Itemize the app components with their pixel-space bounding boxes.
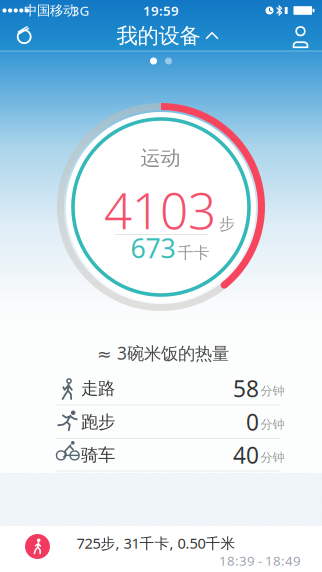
staticText: 0 bbox=[246, 407, 259, 437]
staticText: 步 bbox=[219, 214, 235, 234]
staticText: 千卡 bbox=[177, 243, 209, 263]
staticText: 3G bbox=[71, 2, 89, 19]
button[interactable]: 我的设备 bbox=[116, 14, 217, 58]
staticText: 走路 bbox=[81, 378, 115, 399]
button[interactable]: 725步, 31千卡, 0.50千米 bbox=[0, 526, 322, 572]
staticText: 18:39 - 18:49 bbox=[219, 552, 301, 569]
staticText: 40 bbox=[233, 440, 259, 470]
staticText: 725步, 31千卡, 0.50千米 bbox=[76, 533, 235, 553]
staticText: 4103 bbox=[104, 177, 216, 243]
staticText: 分钟 bbox=[260, 383, 284, 398]
staticText: 673 bbox=[130, 230, 175, 266]
staticText: 骑车 bbox=[81, 444, 115, 466]
button[interactable]: 个人信息 bbox=[285, 23, 315, 53]
staticText: 运动 bbox=[140, 146, 180, 170]
staticText: 58 bbox=[233, 373, 259, 403]
staticText: ≈ 3碗米饭的热量 bbox=[97, 341, 229, 364]
staticText: 跑步 bbox=[81, 411, 115, 433]
button[interactable]: 我的设备 bbox=[9, 20, 39, 50]
staticText: 分钟 bbox=[260, 417, 284, 432]
staticText: 分钟 bbox=[260, 450, 284, 465]
staticText: 中国移动 bbox=[24, 2, 76, 19]
staticText: 我的设备 bbox=[116, 23, 200, 49]
staticText: 19:59 bbox=[143, 2, 179, 19]
